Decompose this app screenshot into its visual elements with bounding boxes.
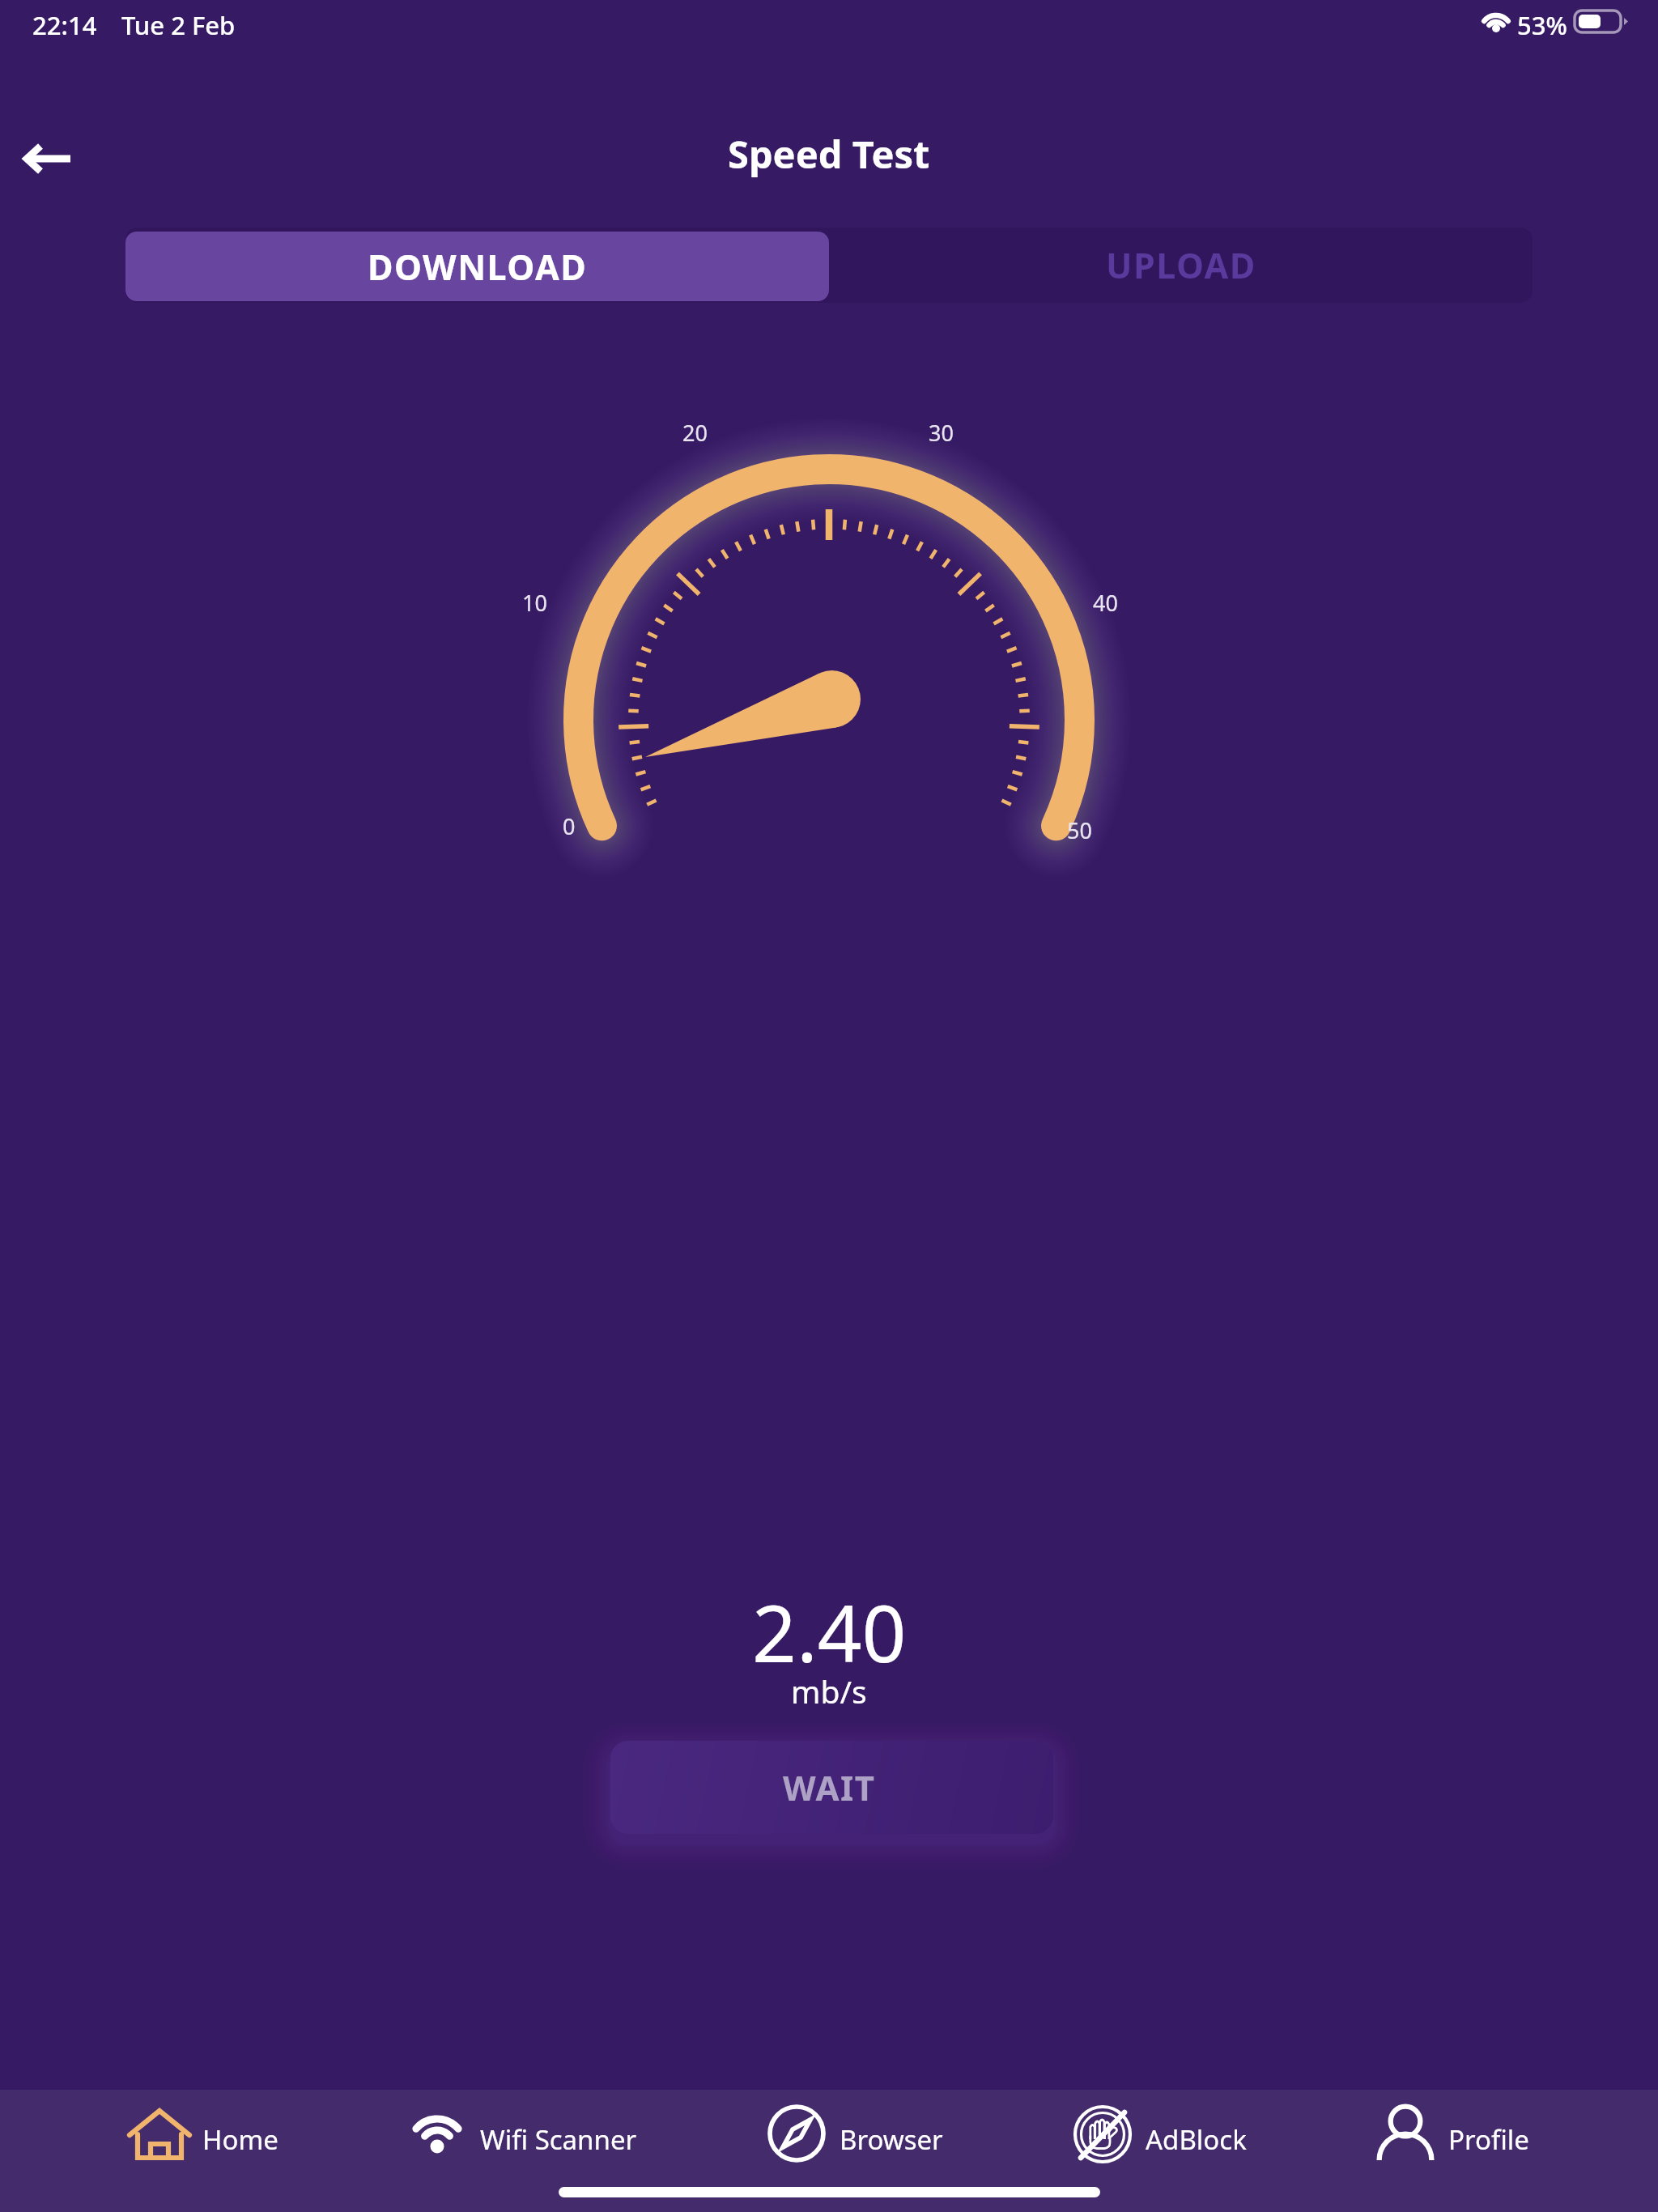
staticText: Tue 2 Feb [121,8,236,42]
staticText: 40 [1093,588,1118,618]
button[interactable]: UPLOAD [829,228,1533,303]
staticText: WAIT [783,1764,876,1810]
staticText: DOWNLOAD [368,243,588,291]
staticText: 22:14 [32,8,97,42]
staticText: 2.40 [752,1579,907,1685]
staticText: Profile [1448,2121,1529,2158]
button[interactable]: Wifi Scanner [406,2108,637,2170]
button[interactable]: WAIT [608,1741,1051,1834]
staticText: Home [202,2121,278,2158]
staticText: AdBlock [1146,2121,1247,2158]
button[interactable]: Profile [1375,2108,1529,2170]
staticText: 20 [682,418,708,448]
staticText: 50 [1067,815,1092,845]
button[interactable]: AdBlock [1072,2108,1247,2170]
button[interactable]: Back [0,110,97,207]
staticText: mb/s [791,1670,867,1712]
staticText: Wifi Scanner [480,2121,637,2158]
staticText: 30 [929,418,954,448]
staticText: 10 [522,588,547,618]
staticText: 53% [1517,8,1567,42]
staticText: Speed Test [728,128,930,180]
staticText: 0 [563,811,576,841]
button[interactable]: Browser [766,2108,943,2170]
staticText: UPLOAD [1106,241,1256,289]
staticText: Browser [840,2121,943,2158]
button[interactable]: DOWNLOAD [125,232,829,301]
button[interactable]: Home [129,2108,278,2170]
